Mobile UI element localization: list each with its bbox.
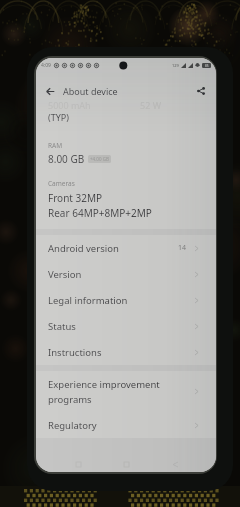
button[interactable]: Share: [194, 84, 208, 98]
button[interactable]: Legal information: [36, 287, 216, 313]
staticText: 8.00 GB: [48, 152, 85, 166]
staticText: 5000 mAh: [48, 99, 91, 111]
button[interactable]: Android version: [36, 235, 216, 261]
button[interactable]: Version: [36, 261, 216, 287]
staticText: 129: [172, 63, 179, 68]
button[interactable]: Instructions: [36, 339, 216, 365]
staticText: About device: [63, 85, 118, 97]
staticText: Legal information: [48, 294, 128, 307]
staticText: programs: [48, 393, 92, 406]
staticText: Cameras: [48, 179, 75, 188]
staticText: 4:09: [41, 62, 51, 69]
staticText: Version: [48, 268, 82, 281]
staticText: Instructions: [48, 346, 102, 359]
staticText: 14: [178, 243, 187, 253]
staticText: 52 W: [140, 99, 162, 111]
staticText: +4.00 GB: [90, 156, 109, 162]
button[interactable]: Status: [36, 313, 216, 339]
staticText: Rear 64MP+8MP+2MP: [48, 206, 152, 220]
staticText: Experience improvement: [48, 378, 160, 391]
staticText: Status: [48, 320, 76, 333]
button[interactable]: Experience improvement: [36, 371, 216, 412]
staticText: 85: [205, 64, 209, 68]
button[interactable]: Regulatory: [36, 412, 216, 438]
staticText: RAM: [48, 141, 63, 150]
staticText: (TYP): [48, 111, 69, 123]
staticText: Regulatory: [48, 419, 97, 432]
staticText: Front 32MP: [48, 191, 103, 205]
staticText: Android version: [48, 242, 119, 255]
button[interactable]: Back: [43, 84, 57, 98]
